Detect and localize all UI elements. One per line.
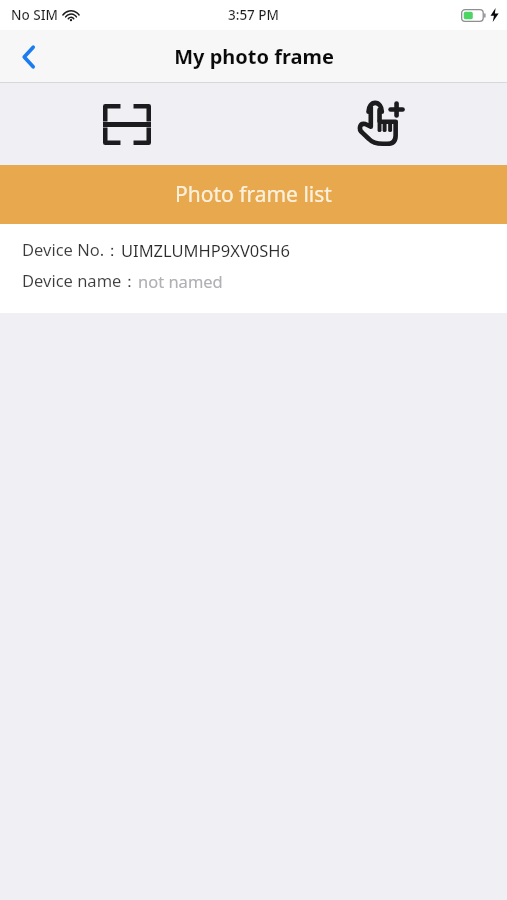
staticText: 3:57 PM bbox=[228, 6, 279, 24]
button[interactable]: Add device manually bbox=[253, 83, 507, 165]
staticText: No SIM bbox=[11, 6, 58, 24]
button[interactable]: Back bbox=[0, 30, 56, 83]
button[interactable]: Device No.： bbox=[0, 224, 507, 313]
staticText: not named bbox=[138, 270, 223, 292]
staticText: Device No.： bbox=[22, 238, 121, 261]
button[interactable]: Scan QR code bbox=[0, 83, 253, 165]
staticText: UIMZLUMHP9XV0SH6 bbox=[121, 239, 290, 261]
button[interactable]: Photo frame list bbox=[0, 165, 507, 224]
staticText: My photo frame bbox=[174, 43, 334, 70]
staticText: Device name： bbox=[22, 269, 138, 292]
staticText: Photo frame list bbox=[175, 180, 332, 209]
